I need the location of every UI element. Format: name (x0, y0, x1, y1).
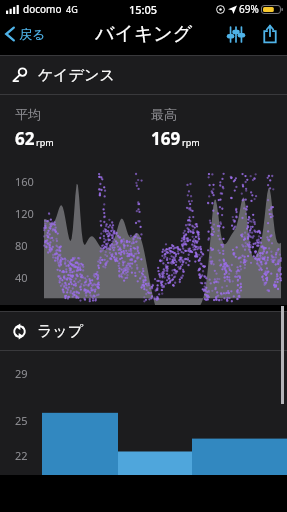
button[interactable]: Share (253, 18, 287, 50)
staticText: 80 (15, 238, 41, 253)
staticText: 25 (15, 413, 39, 428)
staticText: rpm (36, 136, 54, 148)
staticText: 169 (151, 127, 181, 150)
staticText: バイキング (95, 22, 193, 46)
staticText: ケイデンス (38, 66, 115, 85)
button[interactable]: ケイデンス (0, 56, 287, 94)
staticText: 40 (15, 270, 41, 285)
staticText: 4G (66, 3, 78, 15)
button[interactable]: Chart settings (219, 18, 253, 50)
staticText: 平均 (15, 106, 41, 122)
button[interactable]: ラップ (0, 312, 287, 350)
staticText: docomo (23, 2, 62, 16)
staticText: 62 (15, 127, 35, 150)
staticText: 22 (15, 448, 39, 463)
staticText: 最高 (151, 106, 177, 122)
staticText: 15:05 (129, 2, 158, 17)
staticText: rpm (182, 136, 200, 148)
staticText: 120 (15, 206, 41, 221)
staticText: ラップ (37, 322, 84, 341)
staticText: 29 (15, 366, 39, 381)
staticText: 160 (15, 174, 41, 189)
button[interactable]: 戻る (0, 21, 54, 47)
staticText: 戻る (19, 26, 46, 42)
staticText: 69% (239, 2, 259, 16)
